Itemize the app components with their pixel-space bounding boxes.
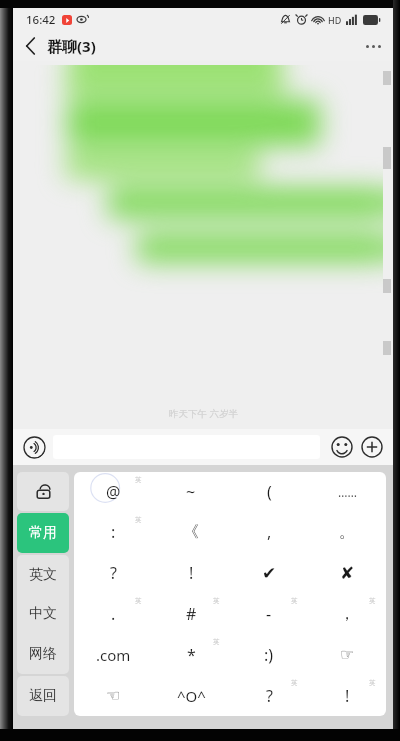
button[interactable] bbox=[17, 472, 69, 511]
button[interactable]: ✘ bbox=[308, 552, 386, 593]
button[interactable]: More functions bbox=[360, 435, 384, 459]
staticText: 英 bbox=[291, 679, 298, 687]
staticText: * bbox=[187, 644, 196, 666]
staticText: ! bbox=[189, 562, 194, 584]
staticText: # bbox=[186, 603, 197, 625]
staticText: , bbox=[267, 521, 272, 543]
staticText: 英 bbox=[369, 679, 376, 687]
button[interactable]: ( bbox=[230, 472, 308, 512]
staticText: 英 bbox=[213, 597, 220, 605]
staticText: 英 bbox=[369, 597, 376, 605]
button[interactable]: ， bbox=[308, 593, 386, 634]
staticText: .com bbox=[96, 645, 131, 665]
staticText: 英文 bbox=[29, 566, 57, 584]
staticText: 英 bbox=[291, 597, 298, 605]
staticText: 。 bbox=[339, 522, 355, 542]
staticText: ☞ bbox=[340, 645, 355, 664]
staticText: ✔ bbox=[262, 563, 277, 583]
button[interactable]: : bbox=[74, 512, 152, 552]
staticText: 中文 bbox=[29, 605, 57, 623]
staticText: 昨天下午 六岁半 bbox=[169, 407, 238, 420]
staticText: ^O^ bbox=[177, 686, 206, 706]
button[interactable]: More options bbox=[353, 31, 393, 61]
button[interactable]: * bbox=[152, 634, 230, 675]
staticText: ( bbox=[267, 481, 272, 503]
button[interactable]: Voice input bbox=[22, 435, 46, 459]
button[interactable]: # bbox=[152, 593, 230, 634]
button[interactable]: ! bbox=[308, 675, 386, 716]
button[interactable]: - bbox=[230, 593, 308, 634]
staticText: 英 bbox=[135, 476, 142, 484]
button[interactable]: Emoji bbox=[330, 435, 354, 459]
button[interactable]: 英文 bbox=[17, 555, 69, 594]
staticText: HD bbox=[328, 14, 342, 26]
staticText: 英 bbox=[135, 597, 142, 605]
button[interactable]: @ bbox=[74, 472, 152, 512]
button[interactable]: 。 bbox=[308, 512, 386, 552]
staticText: - bbox=[266, 603, 272, 625]
staticText: : bbox=[111, 521, 116, 543]
button[interactable]: 中文 bbox=[17, 594, 69, 634]
staticText: . bbox=[111, 603, 116, 625]
button[interactable]: …… bbox=[308, 472, 386, 512]
staticText: ✘ bbox=[340, 563, 355, 583]
staticText: ! bbox=[345, 685, 350, 707]
staticText: 英 bbox=[213, 638, 220, 646]
button[interactable]: :) bbox=[230, 634, 308, 675]
button[interactable]: ☜ bbox=[74, 675, 152, 716]
button[interactable]: .com bbox=[74, 634, 152, 675]
button[interactable]: 《 bbox=[152, 512, 230, 552]
staticText: …… bbox=[338, 484, 357, 500]
staticText: 常用 bbox=[29, 524, 57, 542]
button[interactable]: 返回 bbox=[17, 676, 69, 716]
staticText: :) bbox=[264, 644, 274, 666]
staticText: 网络 bbox=[29, 645, 57, 663]
staticText: ， bbox=[339, 604, 355, 624]
button[interactable]: ☞ bbox=[308, 634, 386, 675]
button[interactable]: ~ bbox=[152, 472, 230, 512]
button[interactable]: ? bbox=[74, 552, 152, 593]
button[interactable]: ? bbox=[230, 675, 308, 716]
button[interactable]: Back bbox=[13, 31, 47, 61]
staticText: 返回 bbox=[29, 687, 57, 705]
staticText: 16:42 bbox=[26, 12, 56, 28]
staticText: 英 bbox=[135, 516, 142, 524]
button[interactable]: . bbox=[74, 593, 152, 634]
staticText: ? bbox=[110, 562, 117, 584]
staticText: 群聊(3) bbox=[47, 36, 96, 56]
button[interactable]: 常用 bbox=[17, 513, 69, 553]
button[interactable]: ^O^ bbox=[152, 675, 230, 716]
button[interactable]: 网络 bbox=[17, 634, 69, 674]
button[interactable]: ! bbox=[152, 552, 230, 593]
staticText: 《 bbox=[183, 522, 199, 542]
staticText: ~ bbox=[186, 481, 196, 503]
button[interactable]: , bbox=[230, 512, 308, 552]
staticText: ☜ bbox=[106, 686, 121, 705]
button[interactable]: ✔ bbox=[230, 552, 308, 593]
staticText: ? bbox=[266, 685, 273, 707]
staticText: @ bbox=[106, 481, 121, 503]
